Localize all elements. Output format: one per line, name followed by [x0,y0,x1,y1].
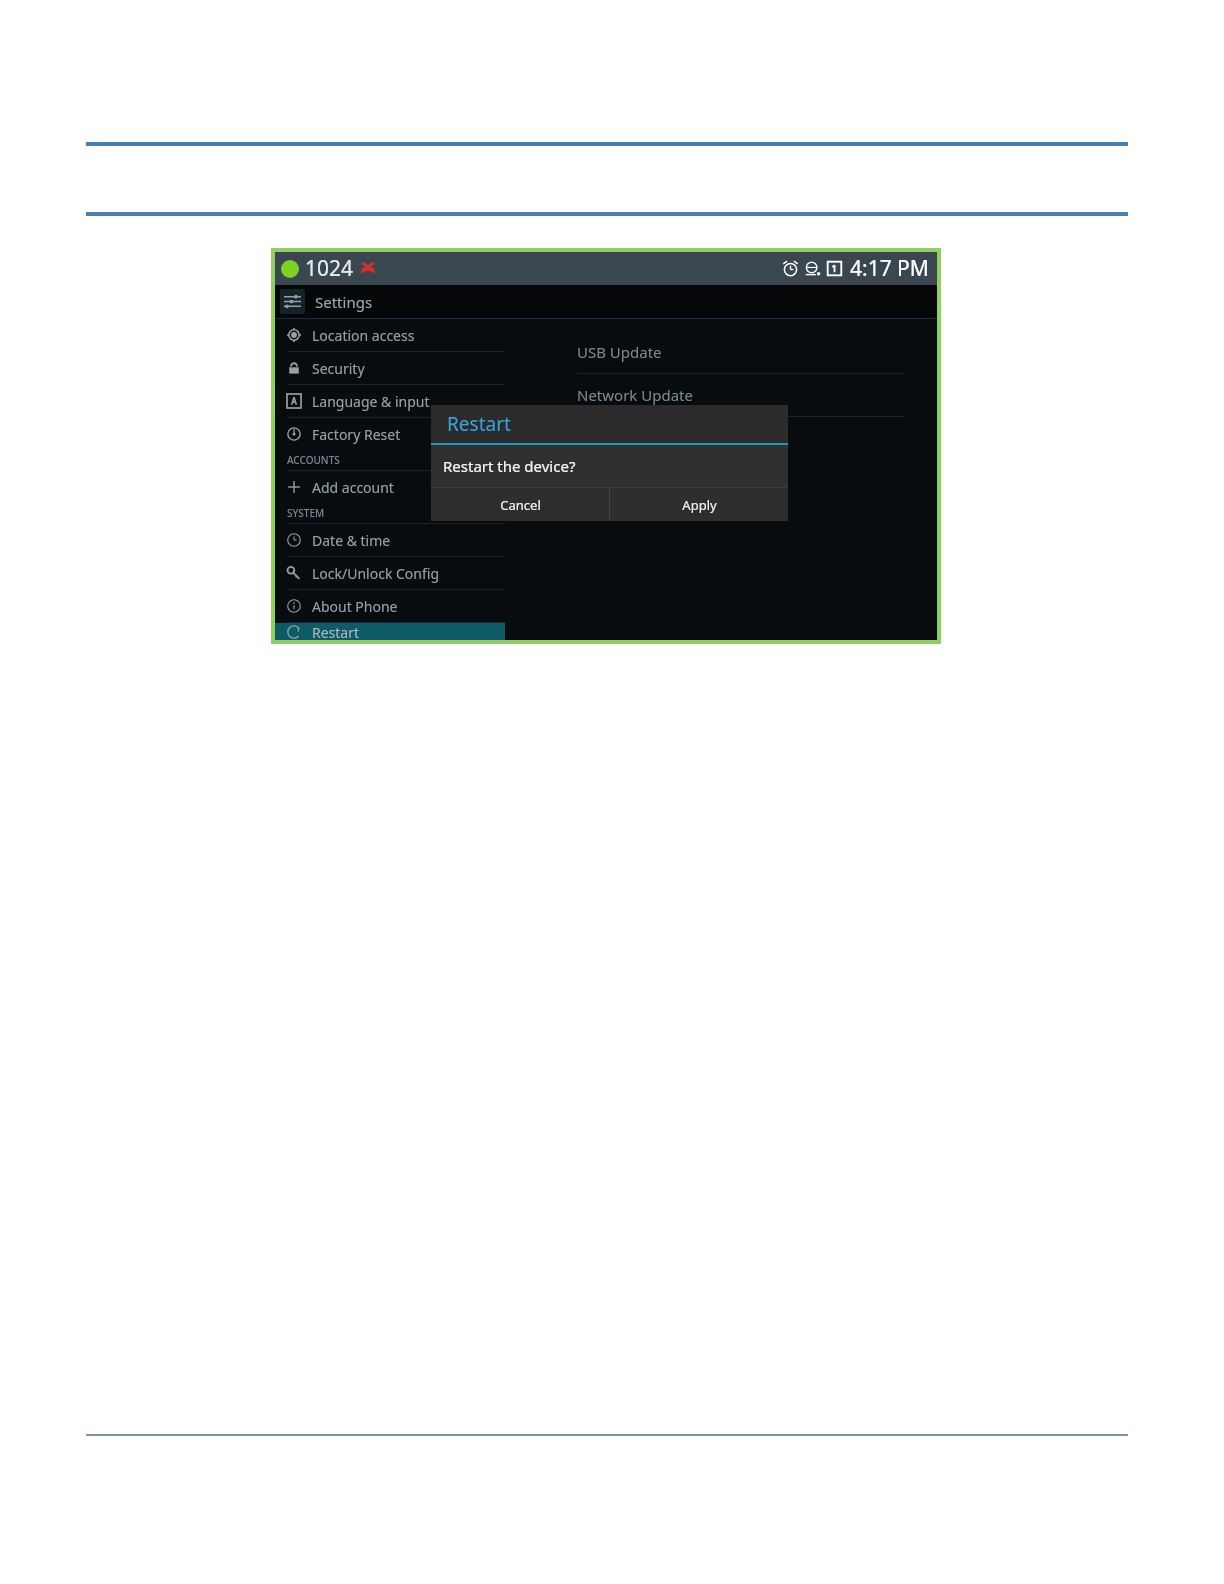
staticText: Location access [312,326,415,345]
button[interactable]: Network Update [577,374,905,416]
staticText: Restart [447,411,511,437]
button[interactable]: Cancel [431,488,609,521]
staticText: Cancel [500,496,541,514]
staticText: 1024 [305,254,354,283]
button[interactable]: Restart [275,623,505,640]
staticText: 4:17 PM [850,254,929,283]
button[interactable]: Security [275,352,505,384]
button[interactable]: Factory Reset [275,418,505,450]
staticText: SYSTEM [287,506,325,520]
button[interactable]: USB Update [577,331,905,373]
button[interactable]: About Phone [275,590,505,622]
staticText: Language & input [312,392,430,411]
staticText: Apply [682,496,717,514]
button[interactable]: Location access [275,319,505,351]
button[interactable]: Add account [275,471,505,503]
button[interactable]: Date & time [275,524,505,556]
staticText: Security [312,359,365,378]
staticText: Factory Reset [312,425,401,444]
button[interactable]: Lock/Unlock Config [275,557,505,589]
staticText: Restart [312,623,360,640]
staticText: ACCOUNTS [287,453,340,467]
staticText: Restart the device? [443,456,576,476]
staticText: Settings [315,292,373,312]
staticText: Date & time [312,531,391,550]
staticText: Network Update [577,385,693,405]
staticText: USB Update [577,342,662,362]
staticText: Lock/Unlock Config [312,564,440,583]
staticText: Add account [312,478,394,497]
button[interactable]: Language & input [275,385,505,417]
staticText: About Phone [312,597,398,616]
button[interactable]: Apply [610,488,788,521]
